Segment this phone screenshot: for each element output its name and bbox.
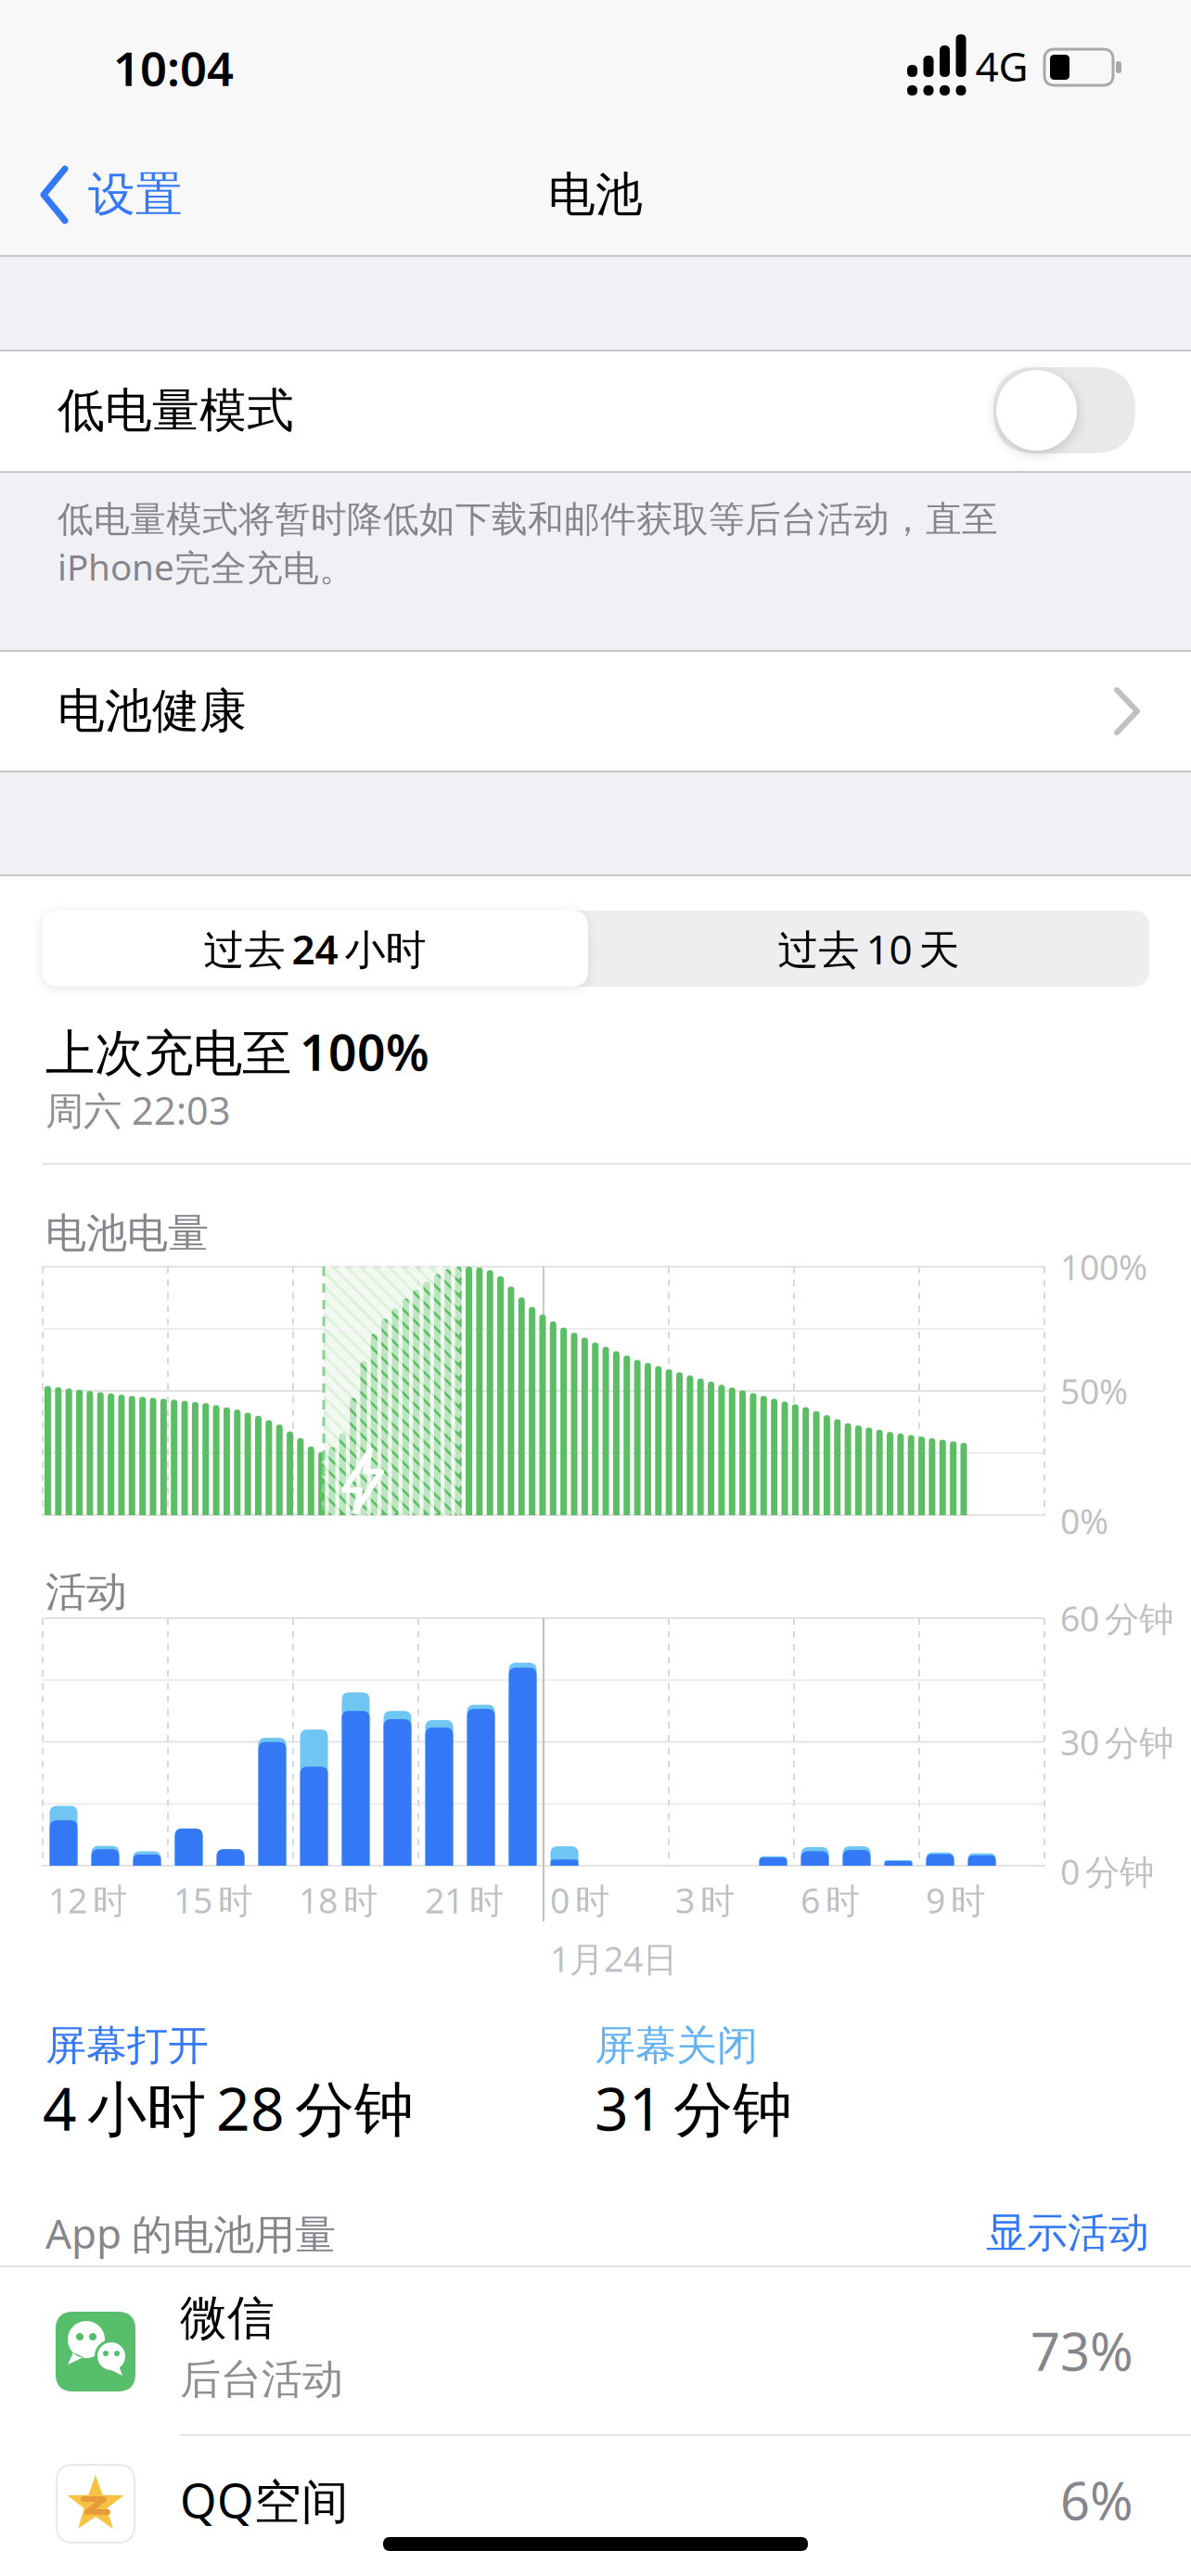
staticText: 电池电量	[45, 1208, 209, 1258]
staticText: 15 时	[173, 1877, 252, 1923]
staticText: QQ空间	[180, 2469, 349, 2531]
staticText: 9 时	[926, 1877, 985, 1923]
button[interactable]: 低电量模式	[993, 367, 1135, 453]
staticText: 过去 24 小时	[204, 922, 426, 976]
staticText: iPhone完全充电。	[58, 543, 355, 590]
staticText: 1月24日	[550, 1935, 677, 1981]
staticText: 4G	[975, 39, 1028, 93]
staticText: 6 时	[800, 1877, 860, 1923]
staticText: 活动	[45, 1567, 127, 1617]
staticText: 后台活动	[180, 2354, 343, 2404]
staticText: 3 时	[675, 1877, 735, 1923]
staticText: 4 小时 28 分钟	[43, 2068, 414, 2147]
button[interactable]: 过去 10 天	[588, 911, 1149, 987]
staticText: 18 时	[299, 1877, 378, 1923]
button[interactable]: 微信	[0, 2267, 1191, 2434]
staticText: 60 分钟	[1060, 1595, 1173, 1641]
button[interactable]: 过去 24 小时	[42, 911, 588, 987]
button[interactable]: 设置	[19, 148, 278, 241]
button[interactable]: QQ空间	[0, 2436, 1191, 2576]
staticText: 0 时	[550, 1877, 609, 1923]
staticText: 电池健康	[58, 682, 247, 740]
staticText: 低电量模式	[58, 382, 294, 440]
staticText: 30 分钟	[1060, 1719, 1173, 1765]
staticText: 73%	[1031, 2316, 1133, 2385]
button[interactable]: 电池健康	[0, 652, 1191, 771]
staticText: 21 时	[425, 1877, 504, 1923]
staticText: App 的电池用量	[45, 2206, 336, 2260]
staticText: 电池	[548, 166, 643, 224]
staticText: 0 分钟	[1060, 1848, 1154, 1894]
staticText: 显示活动	[986, 2208, 1149, 2258]
staticText: 上次充电至 100%	[45, 1019, 429, 1084]
staticText: 微信	[180, 2289, 275, 2347]
staticText: 50%	[1060, 1368, 1128, 1414]
staticText: 周六 22:03	[45, 1085, 231, 1135]
staticText: 10:04	[113, 37, 234, 99]
staticText: 过去 10 天	[778, 922, 960, 976]
staticText: 6%	[1060, 2465, 1133, 2534]
button[interactable]: 显示活动	[871, 2191, 1149, 2275]
staticText: 设置	[88, 166, 183, 224]
staticText: 31 分钟	[595, 2068, 792, 2147]
staticText: 100%	[1060, 1244, 1147, 1290]
staticText: 12 时	[48, 1877, 127, 1923]
staticText: 屏幕关闭	[595, 2021, 758, 2071]
staticText: 屏幕打开	[45, 2021, 209, 2071]
staticText: 0%	[1060, 1498, 1108, 1544]
staticText: 低电量模式将暂时降低如下载和邮件获取等后台活动，直至	[58, 497, 998, 541]
